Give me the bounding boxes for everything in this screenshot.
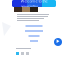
button[interactable]	[12, 40, 56, 42]
button[interactable]	[12, 25, 56, 27]
button[interactable]: Play	[53, 37, 63, 47]
button[interactable]	[12, 30, 56, 32]
button[interactable]	[12, 35, 56, 37]
staticText: Welcome to the newsletter	[20, 0, 47, 9]
